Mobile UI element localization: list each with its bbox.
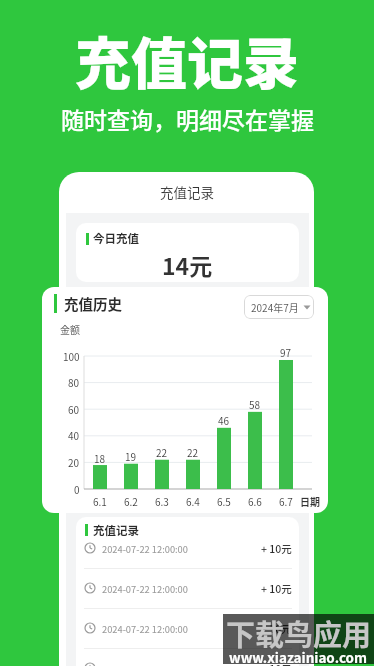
staticText: 18 (94, 451, 106, 465)
staticText: www.xiazainiao.com (229, 647, 368, 664)
staticText: 58 (249, 397, 261, 411)
staticText: + 10元 (261, 581, 292, 596)
staticText: 6.2 (124, 494, 138, 507)
staticText: 19 (125, 449, 137, 463)
staticText: 0 (74, 482, 80, 496)
button[interactable]: 2024-07-22 12:00:00 (84, 612, 292, 644)
staticText: 充值记录 (75, 19, 299, 99)
staticText: 22 (187, 445, 199, 459)
staticText: 6.3 (155, 494, 169, 507)
staticText: 20 (68, 455, 80, 469)
staticText: 随时查询，明细尽在掌握 (61, 102, 314, 135)
staticText: 下载鸟应用 (226, 612, 372, 650)
staticText: 日期 (300, 494, 320, 507)
staticText: 6.6 (248, 494, 262, 507)
staticText: 充值记录 (93, 522, 139, 539)
staticText: 充值历史 (64, 293, 122, 314)
staticText: 2024年7月 (251, 300, 299, 314)
staticText: + 10元 (261, 621, 292, 636)
button[interactable]: 2024年7月 (244, 295, 314, 319)
staticText: 46 (218, 413, 230, 427)
button[interactable]: 今日充值 (76, 223, 299, 282)
staticText: + 10元 (261, 541, 292, 556)
staticText: 2024-07-22 12:00:00 (102, 542, 188, 555)
staticText: 2024-07-22 12:00:00 (102, 622, 188, 635)
staticText: 60 (68, 402, 80, 416)
button[interactable]: 2024-07-22 12:00:00 (84, 572, 292, 604)
staticText: 6.4 (186, 494, 200, 507)
staticText: 100 (63, 349, 80, 363)
staticText: 金额 (60, 322, 80, 336)
staticText: 40 (68, 428, 80, 442)
staticText: + 10元 (261, 661, 292, 666)
staticText: 今日充值 (93, 230, 139, 247)
staticText: 97 (280, 345, 292, 359)
staticText: 充值记录 (160, 182, 214, 202)
staticText: 22 (156, 445, 168, 459)
button[interactable]: 2024-07-22 12:00:00 (84, 532, 292, 564)
staticText: 6.1 (93, 494, 107, 507)
staticText: 6.7 (279, 494, 293, 507)
staticText: 14元 (162, 248, 213, 280)
staticText: 6.5 (217, 494, 231, 507)
staticText: 2024-07-22 12:00:00 (102, 582, 188, 595)
button[interactable]: 2024-07-22 12:00:00 (84, 652, 292, 666)
staticText: 80 (68, 375, 80, 389)
